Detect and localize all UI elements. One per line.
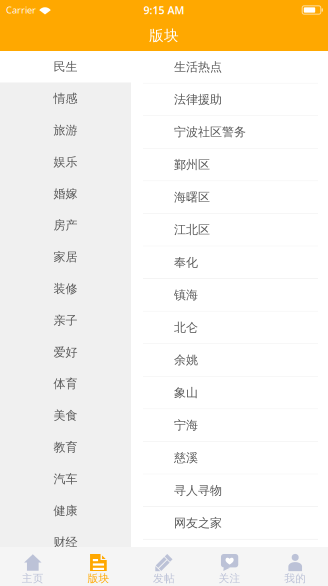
staticText: 主页 bbox=[22, 572, 44, 585]
staticText: 情感 bbox=[53, 91, 77, 106]
staticText: 法律援助 bbox=[174, 92, 222, 107]
button[interactable]: 家居 bbox=[0, 241, 131, 273]
button[interactable]: 北仑 bbox=[131, 312, 328, 344]
button[interactable]: 关注 bbox=[197, 547, 262, 586]
staticText: 房产 bbox=[53, 218, 77, 233]
staticText: 关注 bbox=[219, 572, 241, 585]
button[interactable]: 教育 bbox=[0, 431, 131, 463]
staticText: 奉化 bbox=[174, 255, 198, 270]
staticText: 发帖 bbox=[153, 572, 175, 585]
button[interactable]: 发帖 bbox=[131, 547, 197, 586]
button[interactable]: 健康 bbox=[0, 495, 131, 526]
button[interactable]: 美食 bbox=[0, 400, 131, 431]
staticText: 民生 bbox=[53, 59, 77, 74]
button[interactable]: 娱乐 bbox=[0, 146, 131, 178]
button[interactable]: 爱好 bbox=[0, 336, 131, 368]
button[interactable]: 旅游 bbox=[0, 114, 131, 146]
staticText: 宁波社区警务 bbox=[174, 125, 246, 139]
staticText: 版块 bbox=[87, 572, 109, 585]
button[interactable]: 法律援助 bbox=[131, 84, 328, 116]
staticText: 装修 bbox=[53, 281, 77, 296]
staticText: Carrier bbox=[6, 4, 36, 16]
staticText: 健康 bbox=[53, 503, 77, 518]
staticText: 海曙区 bbox=[174, 190, 210, 205]
button[interactable]: 亲子 bbox=[0, 305, 131, 336]
staticText: 北仑 bbox=[174, 320, 198, 335]
button[interactable]: 余姚 bbox=[131, 344, 328, 377]
staticText: 鄞州区 bbox=[174, 157, 210, 172]
button[interactable]: 镇海 bbox=[131, 279, 328, 312]
button[interactable]: 海曙区 bbox=[131, 181, 328, 214]
button[interactable]: 生活热点 bbox=[131, 51, 328, 84]
staticText: 娱乐 bbox=[53, 155, 77, 169]
button[interactable]: 网友之家 bbox=[131, 507, 328, 540]
button[interactable]: 民生 bbox=[0, 51, 131, 83]
button[interactable]: 房产 bbox=[0, 209, 131, 241]
staticText: 网友之家 bbox=[174, 516, 222, 530]
button[interactable]: 汽车 bbox=[0, 463, 131, 495]
button[interactable]: 体育 bbox=[0, 368, 131, 400]
staticText: 宁海 bbox=[174, 418, 198, 433]
button[interactable]: 慈溪 bbox=[131, 442, 328, 474]
staticText: 亲子 bbox=[53, 313, 77, 328]
staticText: 余姚 bbox=[174, 353, 198, 367]
staticText: 婚嫁 bbox=[53, 186, 77, 201]
staticText: 汽车 bbox=[53, 472, 77, 486]
staticText: 爱好 bbox=[53, 345, 77, 359]
button[interactable]: 财经 bbox=[0, 526, 131, 558]
staticText: 版块 bbox=[149, 26, 179, 44]
staticText: 9:15 AM bbox=[143, 3, 184, 17]
staticText: 美食 bbox=[53, 408, 77, 423]
button[interactable]: 主页 bbox=[0, 547, 66, 586]
staticText: 寻人寻物 bbox=[174, 483, 222, 498]
staticText: 镇海 bbox=[174, 288, 198, 302]
staticText: 财经 bbox=[53, 535, 77, 550]
button[interactable]: 装修 bbox=[0, 273, 131, 305]
button[interactable]: 江北区 bbox=[131, 214, 328, 246]
button[interactable]: 版块 bbox=[66, 547, 131, 586]
button[interactable]: 寻人寻物 bbox=[131, 474, 328, 507]
button[interactable]: 奉化 bbox=[131, 246, 328, 279]
button[interactable]: 宁海 bbox=[131, 409, 328, 442]
button[interactable]: 婚嫁 bbox=[0, 178, 131, 209]
staticText: 体育 bbox=[53, 376, 77, 391]
staticText: 江北区 bbox=[174, 222, 210, 237]
staticText: 旅游 bbox=[53, 123, 77, 138]
staticText: 教育 bbox=[53, 440, 77, 455]
staticText: 象山 bbox=[174, 385, 198, 400]
staticText: 我的 bbox=[284, 572, 306, 585]
button[interactable]: 宁波社区警务 bbox=[131, 116, 328, 149]
staticText: 生活热点 bbox=[174, 60, 222, 74]
button[interactable]: 我的 bbox=[262, 547, 328, 586]
staticText: 慈溪 bbox=[174, 450, 198, 465]
staticText: 家居 bbox=[53, 250, 77, 264]
button[interactable]: 鄞州区 bbox=[131, 149, 328, 181]
button[interactable]: 情感 bbox=[0, 83, 131, 114]
button[interactable]: 象山 bbox=[131, 377, 328, 409]
